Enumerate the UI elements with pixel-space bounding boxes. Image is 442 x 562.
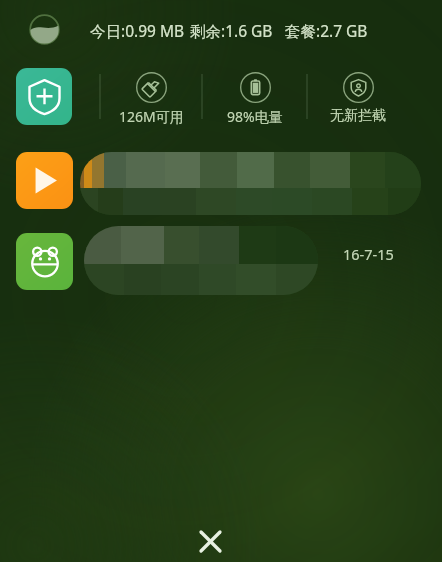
- staticText: 98%电量: [227, 107, 283, 126]
- staticText: 今日:0.99 MB: [90, 20, 185, 41]
- staticText: 剩余:1.6 GB: [190, 20, 273, 41]
- staticText: 无新拦截: [330, 107, 386, 125]
- button[interactable]: Data usage: [29, 14, 60, 45]
- button[interactable]: Assistant: [16, 233, 73, 290]
- staticText: 套餐:2.7 GB: [285, 20, 368, 41]
- button[interactable]: 无新拦截: [308, 69, 408, 127]
- staticText: 16-7-15: [343, 244, 394, 264]
- button[interactable]: 98%电量: [205, 69, 305, 127]
- staticText: 126M可用: [119, 107, 184, 126]
- button[interactable]: Video player: [16, 152, 73, 209]
- button[interactable]: Close: [193, 524, 227, 558]
- button[interactable]: Security scan: [16, 68, 72, 125]
- button[interactable]: 126M可用: [101, 69, 201, 127]
